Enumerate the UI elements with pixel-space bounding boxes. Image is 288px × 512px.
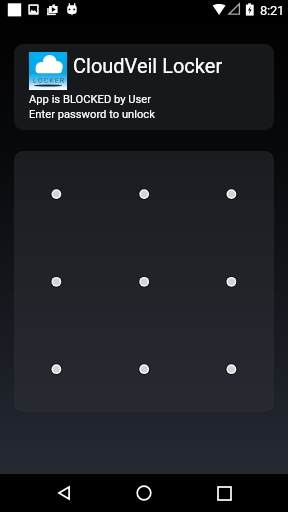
button[interactable]: Recents <box>200 474 248 512</box>
button[interactable]: LOCKER <box>14 44 274 130</box>
button[interactable] <box>14 151 274 412</box>
staticText: Enter password to unlock <box>29 108 155 121</box>
button[interactable]: Back <box>40 474 88 512</box>
button[interactable]: Home <box>120 474 168 512</box>
staticText: 8:21 <box>260 3 285 18</box>
staticText: App is BLOCKED by User <box>29 93 152 106</box>
staticText: LOCKER <box>33 76 66 84</box>
staticText: CloudVeil Locker <box>73 54 223 77</box>
